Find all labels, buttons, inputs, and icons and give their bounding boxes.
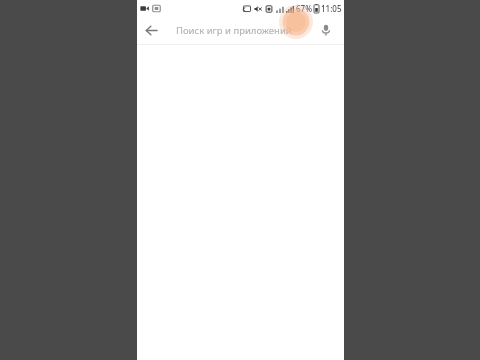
button[interactable]: Голосовой поиск <box>312 16 340 44</box>
staticText: Поиск игр и приложений <box>176 24 292 37</box>
button[interactable]: Поиск игр и приложений <box>176 16 312 44</box>
button[interactable]: Назад <box>137 16 165 44</box>
staticText: 67% <box>296 3 312 14</box>
staticText: 11:05 <box>321 3 342 14</box>
